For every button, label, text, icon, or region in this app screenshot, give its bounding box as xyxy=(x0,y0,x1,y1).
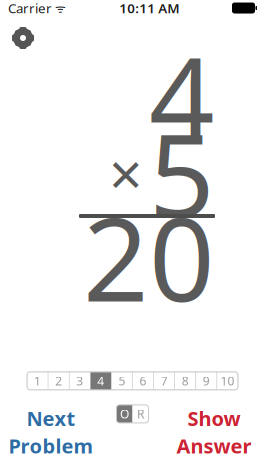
staticText: 5 xyxy=(149,97,215,249)
staticText: × xyxy=(109,134,143,212)
staticText: 8 xyxy=(182,373,189,389)
staticText: 4 xyxy=(97,373,104,389)
staticText: Show xyxy=(187,405,240,431)
button[interactable]: 7 xyxy=(154,372,175,390)
button[interactable]: 2 xyxy=(48,372,69,390)
staticText: 3 xyxy=(76,373,83,389)
staticText: Carrier xyxy=(8,0,52,17)
button[interactable]: Show xyxy=(171,403,257,461)
button[interactable]: Settings xyxy=(7,22,39,54)
staticText: 6 xyxy=(140,373,147,389)
button[interactable]: Next xyxy=(8,403,94,461)
staticText: 10 xyxy=(220,373,234,389)
button[interactable]: 8 xyxy=(175,372,196,390)
button[interactable]: 10 xyxy=(217,372,238,390)
staticText: 1 xyxy=(34,373,41,389)
button[interactable]: 4 xyxy=(90,372,111,390)
staticText: R xyxy=(137,406,144,422)
button[interactable]: 6 xyxy=(132,372,154,390)
button[interactable]: 9 xyxy=(196,372,217,390)
button[interactable]: 5 xyxy=(111,372,132,390)
staticText: 10:11 AM xyxy=(119,0,179,17)
staticText: Problem xyxy=(8,432,93,459)
staticText: 9 xyxy=(203,373,210,389)
staticText: 20 xyxy=(83,181,215,333)
staticText: Answer xyxy=(176,432,251,459)
button[interactable]: R xyxy=(132,405,148,423)
button[interactable]: O xyxy=(116,405,132,423)
staticText: 7 xyxy=(161,373,168,389)
staticText: 5 xyxy=(118,373,125,389)
staticText: 4 xyxy=(149,21,215,173)
staticText: O xyxy=(120,406,129,422)
staticText: 2 xyxy=(55,373,62,389)
button[interactable]: 1 xyxy=(27,372,48,390)
staticText: Next xyxy=(26,405,75,431)
staticText: ᯤ xyxy=(52,0,66,16)
button[interactable]: 3 xyxy=(69,372,90,390)
